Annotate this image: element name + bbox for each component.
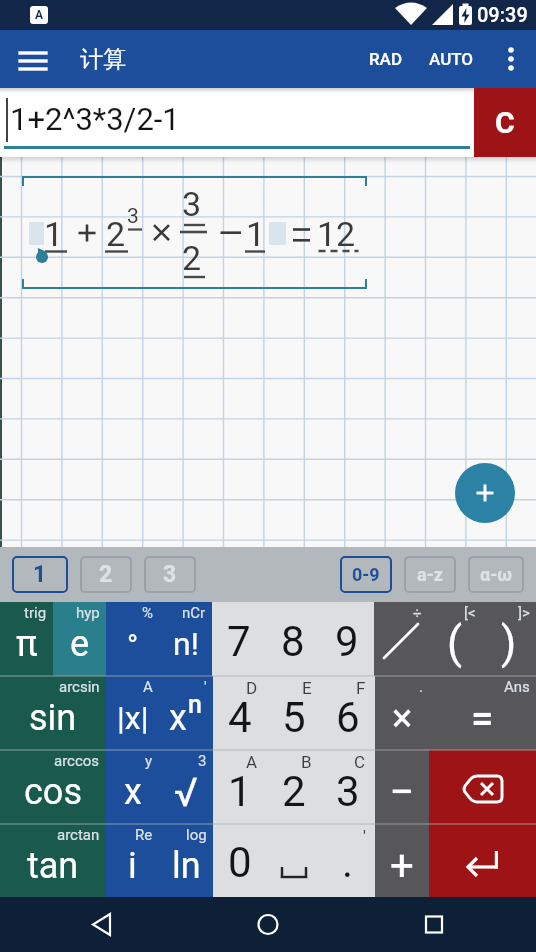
- staticText: −: [389, 766, 415, 818]
- staticText: tan: [27, 845, 79, 887]
- button[interactable]: E: [267, 676, 321, 750]
- button[interactable]: [429, 750, 536, 824]
- button[interactable]: arcsin: [0, 676, 106, 750]
- staticText: ÷: [413, 604, 422, 622]
- staticText: 3: [336, 767, 360, 816]
- staticText: +: [390, 841, 414, 890]
- button[interactable]: −: [375, 750, 429, 824]
- button[interactable]: A: [213, 750, 267, 824]
- staticText: 9: [335, 617, 359, 666]
- staticText: arcsin: [59, 678, 100, 696]
- staticText: Ans: [504, 678, 530, 696]
- button[interactable]: B: [267, 750, 321, 824]
- button[interactable]: ': [321, 824, 375, 897]
- staticText: 1: [246, 214, 266, 254]
- button[interactable]: 0-9: [340, 556, 392, 593]
- staticText: A: [35, 8, 44, 22]
- button[interactable]: F: [321, 676, 375, 750]
- button[interactable]: ': [159, 676, 213, 750]
- staticText: RAD: [369, 49, 403, 69]
- staticText: [<: [464, 604, 476, 622]
- button[interactable]: α-ω: [468, 556, 524, 593]
- button[interactable]: [8, 47, 56, 87]
- staticText: 2: [106, 214, 126, 254]
- button[interactable]: %: [106, 602, 159, 676]
- button[interactable]: [404, 897, 464, 952]
- staticText: arctan: [57, 826, 100, 844]
- button[interactable]: trig: [0, 602, 53, 676]
- staticText: log: [186, 826, 207, 844]
- staticText: C: [354, 752, 366, 772]
- staticText: x: [124, 771, 142, 813]
- staticText: 1: [228, 767, 252, 816]
- button[interactable]: y: [106, 750, 159, 824]
- staticText: sin: [29, 697, 77, 739]
- staticText: 4: [228, 693, 252, 742]
- button[interactable]: a-z: [404, 556, 456, 593]
- staticText: a-z: [417, 564, 443, 585]
- button[interactable]: 3: [144, 556, 196, 593]
- button[interactable]: arccos: [0, 750, 106, 824]
- button[interactable]: A: [106, 676, 159, 750]
- button[interactable]: +: [375, 824, 429, 897]
- staticText: Re: [135, 826, 153, 844]
- staticText: 2: [99, 561, 113, 588]
- staticText: 2: [282, 767, 306, 816]
- staticText: α-ω: [480, 564, 512, 585]
- button[interactable]: .: [375, 676, 429, 750]
- button[interactable]: [455, 463, 515, 523]
- button[interactable]: 3: [159, 750, 213, 824]
- button[interactable]: D: [213, 676, 267, 750]
- button[interactable]: [494, 40, 528, 78]
- button[interactable]: [238, 897, 298, 952]
- staticText: 1: [33, 561, 47, 588]
- staticText: D: [246, 678, 258, 698]
- button[interactable]: [267, 824, 321, 897]
- staticText: ]>: [518, 604, 530, 622]
- staticText: 7: [227, 617, 251, 666]
- staticText: 3: [127, 204, 139, 229]
- button[interactable]: 1: [12, 556, 68, 593]
- staticText: y: [145, 752, 153, 770]
- button[interactable]: log: [159, 824, 213, 897]
- staticText: F: [356, 678, 366, 698]
- button[interactable]: [429, 824, 536, 897]
- staticText: e: [70, 623, 90, 665]
- button[interactable]: ]>: [482, 602, 536, 676]
- button[interactable]: 7: [212, 602, 266, 676]
- button[interactable]: hyp: [53, 602, 106, 676]
- staticText: n!: [173, 625, 199, 663]
- staticText: 0-9: [352, 564, 380, 585]
- button[interactable]: Re: [106, 824, 159, 897]
- staticText: ': [363, 826, 366, 846]
- staticText: (: [447, 617, 463, 669]
- button[interactable]: AUTO: [418, 40, 484, 78]
- button[interactable]: 2: [80, 556, 132, 593]
- button[interactable]: 8: [266, 602, 320, 676]
- staticText: 1+2^3*3/2-1: [10, 101, 180, 137]
- button[interactable]: 9: [320, 602, 374, 676]
- button[interactable]: C: [474, 88, 536, 157]
- staticText: ': [204, 678, 207, 696]
- staticText: |x|: [117, 699, 149, 737]
- button[interactable]: [<: [428, 602, 482, 676]
- staticText: °: [127, 628, 139, 663]
- staticText: B: [301, 752, 312, 772]
- staticText: ): [501, 617, 517, 669]
- staticText: .: [342, 838, 354, 887]
- button[interactable]: 0: [213, 824, 267, 897]
- staticText: arccos: [54, 752, 100, 770]
- staticText: trig: [24, 604, 47, 622]
- staticText: 3: [198, 752, 207, 770]
- button[interactable]: C: [321, 750, 375, 824]
- button[interactable]: RAD: [358, 40, 414, 78]
- staticText: √: [174, 769, 198, 816]
- staticText: E: [302, 678, 312, 698]
- button[interactable]: Ans: [429, 676, 536, 750]
- staticText: =: [471, 695, 494, 742]
- button[interactable]: arctan: [0, 824, 106, 897]
- button[interactable]: ÷: [374, 602, 428, 676]
- button[interactable]: nCr: [159, 602, 212, 676]
- staticText: %: [142, 604, 153, 622]
- button[interactable]: [72, 897, 132, 952]
